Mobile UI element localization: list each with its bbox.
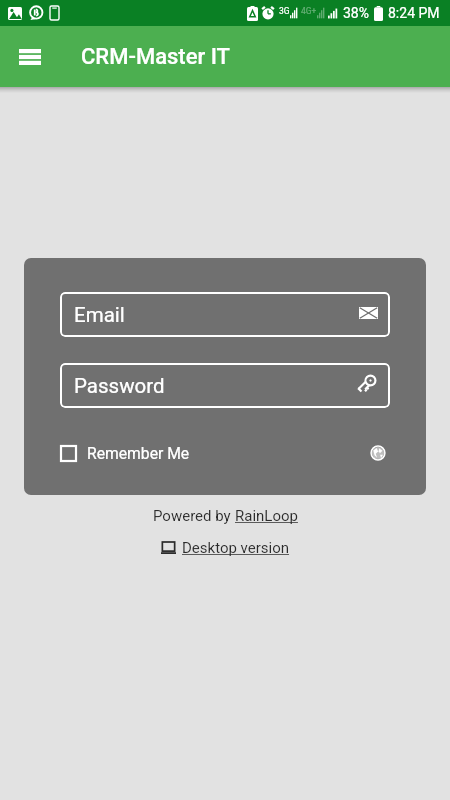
staticText: 38% bbox=[343, 5, 369, 21]
button[interactable]: Password bbox=[60, 363, 390, 408]
staticText: Powered by bbox=[153, 507, 235, 525]
staticText: CRM-Master IT bbox=[81, 44, 231, 70]
staticText: Desktop version bbox=[182, 539, 290, 557]
staticText: 3G bbox=[279, 6, 290, 16]
staticText: Email bbox=[74, 303, 125, 327]
button[interactable]: Email bbox=[60, 292, 390, 337]
button[interactable]: Change language bbox=[366, 441, 390, 465]
staticText: 8:24 PM bbox=[388, 5, 440, 21]
button[interactable]: Desktop version bbox=[161, 539, 290, 557]
staticText: RainLoop bbox=[235, 507, 298, 525]
staticText: 4G+ bbox=[301, 6, 317, 16]
button[interactable]: RainLoop bbox=[235, 507, 298, 525]
staticText: Remember Me bbox=[87, 444, 190, 462]
staticText: Password bbox=[74, 374, 165, 398]
button[interactable]: Remember Me bbox=[60, 444, 190, 462]
button[interactable]: Open navigation menu bbox=[8, 35, 52, 79]
